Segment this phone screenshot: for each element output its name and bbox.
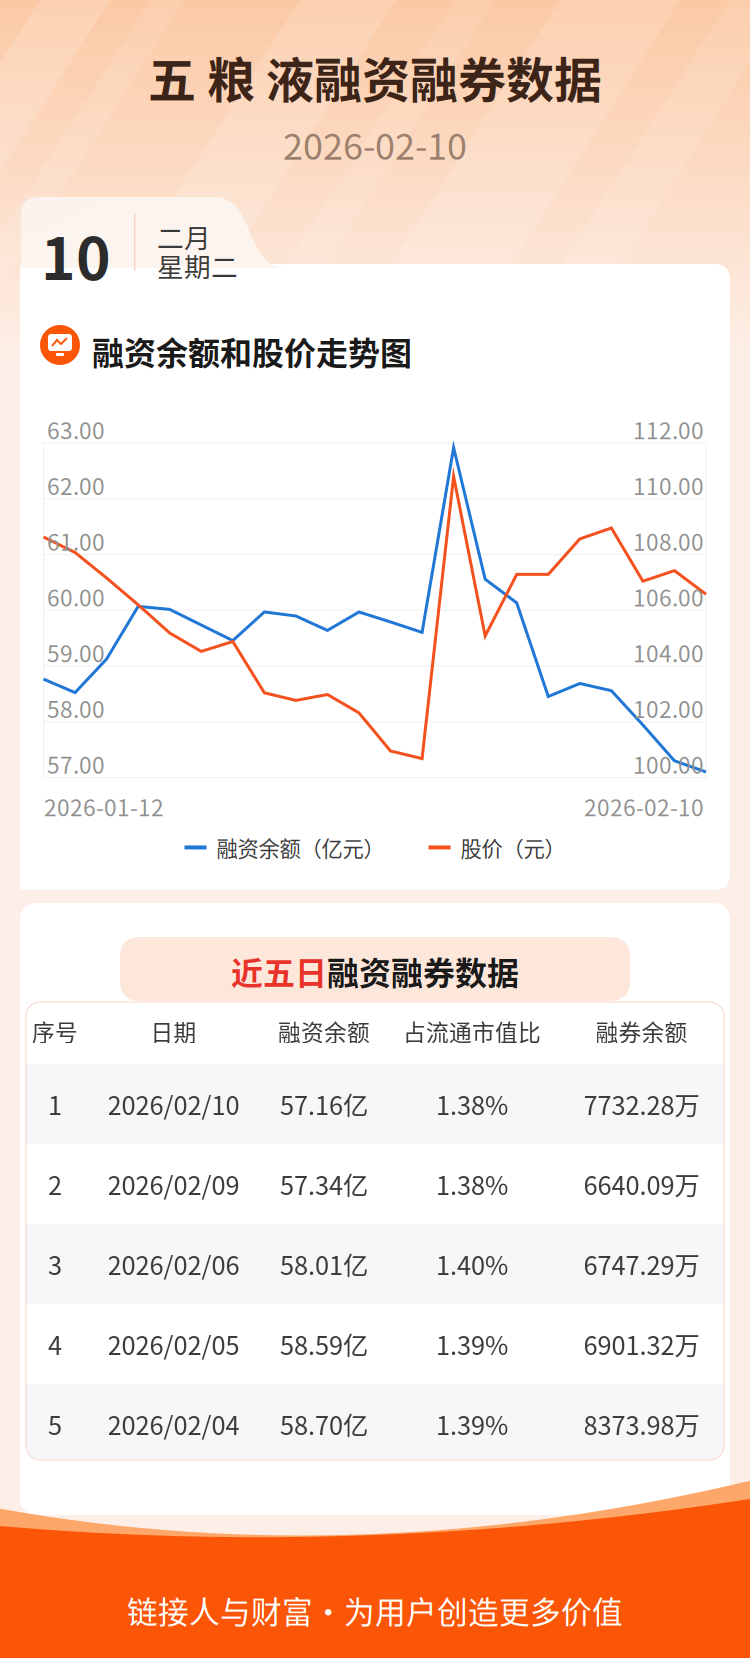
staticText: 融资余额（亿元） <box>216 832 384 863</box>
staticText: 108.00 <box>633 524 704 557</box>
staticText: 112.00 <box>633 413 704 446</box>
staticText: 近五日 <box>231 948 327 994</box>
staticText: 1.40% <box>436 1246 508 1282</box>
staticText: 57.34亿 <box>280 1166 368 1202</box>
staticText: 58.70亿 <box>280 1406 368 1442</box>
staticText: 2026/02/06 <box>107 1246 239 1282</box>
staticText: 星期二 <box>157 246 238 285</box>
staticText: 6747.29万 <box>583 1246 699 1282</box>
staticText: 102.00 <box>633 692 704 725</box>
staticText: 1.39% <box>436 1326 508 1362</box>
staticText: 57.16亿 <box>280 1086 368 1122</box>
staticText: 1.38% <box>436 1086 508 1122</box>
staticText: 2026/02/10 <box>107 1086 239 1122</box>
staticText: 股价（元） <box>460 832 565 863</box>
staticText: 2026-02-10 <box>283 118 467 170</box>
staticText: 6640.09万 <box>583 1166 699 1202</box>
staticText: 2026/02/05 <box>107 1326 239 1362</box>
staticText: 61.00 <box>47 524 105 557</box>
staticText: 7732.28万 <box>583 1086 699 1122</box>
staticText: 五 粮 液融资融券数据 <box>148 42 602 111</box>
staticText: 1 <box>48 1086 62 1122</box>
staticText: 融券余额 <box>595 1015 687 1047</box>
staticText: 1.38% <box>436 1166 508 1202</box>
staticText: 2026-01-12 <box>44 790 164 823</box>
staticText: 融资融券数据 <box>327 948 519 994</box>
staticText: 59.00 <box>47 636 105 669</box>
staticText: 106.00 <box>633 580 704 613</box>
staticText: 57.00 <box>47 747 105 780</box>
staticText: 链接人与财富·为用户创造更多价值 <box>127 1588 623 1632</box>
staticText: 58.00 <box>47 692 105 725</box>
staticText: 58.01亿 <box>280 1246 368 1282</box>
staticText: 100.00 <box>633 747 704 780</box>
staticText: 8373.98万 <box>583 1406 699 1442</box>
staticText: 2 <box>48 1166 62 1202</box>
staticText: 3 <box>48 1246 62 1282</box>
staticText: 1.39% <box>436 1406 508 1442</box>
staticText: 10 <box>41 212 111 297</box>
staticText: 110.00 <box>633 469 704 502</box>
staticText: 日期 <box>150 1015 196 1047</box>
staticText: 58.59亿 <box>280 1326 368 1362</box>
staticText: 104.00 <box>633 636 704 669</box>
staticText: 62.00 <box>47 469 105 502</box>
staticText: 融资余额 <box>278 1015 370 1047</box>
staticText: 6901.32万 <box>583 1326 699 1362</box>
staticText: 2026-02-10 <box>584 790 704 823</box>
staticText: 融资余额和股价走势图 <box>92 328 412 374</box>
staticText: 4 <box>48 1326 62 1362</box>
staticText: 5 <box>48 1406 62 1442</box>
staticText: 序号 <box>32 1015 78 1047</box>
staticText: 60.00 <box>47 580 105 613</box>
staticText: 2026/02/04 <box>107 1406 239 1442</box>
staticText: 2026/02/09 <box>107 1166 239 1202</box>
staticText: 二月 <box>157 217 211 256</box>
staticText: 63.00 <box>47 413 105 446</box>
staticText: 占流通市值比 <box>403 1015 541 1047</box>
